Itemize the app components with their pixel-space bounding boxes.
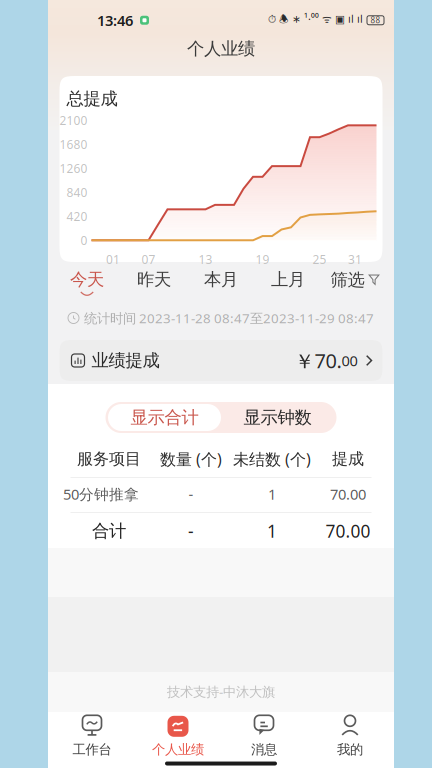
staticText: ⏱ 🕭 ∗ ¹·⁰⁰ ᯤ ▣ ıl ıl [268, 11, 363, 29]
button[interactable]: 本月 [187, 267, 254, 298]
staticText: 01 [106, 251, 120, 267]
staticText: - [188, 519, 194, 542]
staticText: 个人业绩 [187, 38, 255, 59]
button[interactable]: 显示合计 [108, 404, 221, 431]
staticText: 50分钟推拿 [63, 484, 139, 504]
staticText: 00 [341, 351, 357, 370]
staticText: 筛选 [330, 269, 364, 291]
staticText: 70.00 [330, 484, 366, 504]
staticText: 07 [141, 251, 155, 267]
staticText: 个人业绩 [152, 741, 204, 758]
staticText: 总提成 [66, 88, 117, 109]
staticText: 31 [348, 251, 362, 267]
staticText: 1 [267, 519, 277, 542]
staticText: 13:46 [97, 10, 133, 30]
staticText: 25 [312, 251, 326, 267]
button[interactable]: 上月 [254, 267, 321, 298]
button[interactable]: 个人业绩 [135, 713, 221, 759]
staticText: 今天 [70, 269, 104, 290]
button[interactable]: 工作台 [49, 713, 135, 759]
staticText: 上月 [271, 269, 305, 290]
staticText: 1 [268, 484, 276, 504]
staticText: 2100 [59, 112, 87, 128]
button[interactable]: 显示钟数 [221, 404, 334, 431]
button[interactable]: 昨天 [120, 267, 187, 298]
staticText: 未结数 (个) [233, 448, 311, 470]
staticText: 1680 [59, 136, 87, 152]
staticText: 1260 [59, 160, 87, 176]
button[interactable]: 今天 [53, 267, 120, 298]
staticText: 工作台 [72, 741, 111, 758]
staticText: 0 [80, 232, 87, 248]
staticText: 合计 [92, 520, 126, 542]
staticText: 统计时间 2023-11-28 08:47至2023-11-29 08:47 [84, 309, 374, 327]
staticText: 13 [198, 251, 212, 267]
staticText: 消息 [251, 741, 277, 758]
staticText: 昨天 [137, 269, 171, 290]
staticText: 提成 [332, 449, 364, 469]
staticText: 技术支持-中沐大旗 [167, 683, 275, 700]
staticText: 本月 [204, 269, 238, 290]
staticText: 70.00 [325, 519, 370, 542]
staticText: 19 [255, 251, 269, 267]
button[interactable]: 业绩提成 [59, 340, 382, 381]
staticText: 我的 [337, 741, 363, 758]
staticText: 840 [66, 184, 87, 200]
staticText: 显示合计 [130, 407, 198, 428]
staticText: - [188, 484, 193, 504]
staticText: 服务项目 [77, 449, 141, 469]
button[interactable]: 消息 [221, 713, 307, 759]
button[interactable]: 筛选 [321, 264, 388, 300]
staticText: ￥70. [294, 347, 341, 374]
staticText: 420 [66, 208, 87, 224]
button[interactable]: 我的 [307, 713, 393, 759]
staticText: 数量 (个) [160, 448, 222, 470]
staticText: 88 [370, 15, 380, 25]
staticText: 显示钟数 [243, 407, 311, 428]
staticText: 业绩提成 [91, 350, 159, 371]
